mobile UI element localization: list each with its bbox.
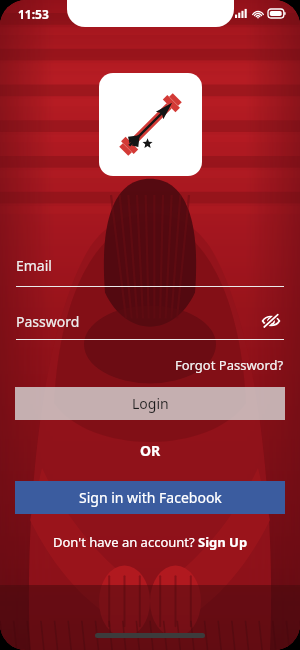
staticText: Don't have an account? Sign Up xyxy=(53,533,248,551)
staticText: Login xyxy=(132,394,169,413)
button[interactable]: Email xyxy=(16,256,284,287)
staticText: Email xyxy=(16,256,52,275)
button[interactable]: Forgot Password? xyxy=(175,356,284,374)
button[interactable]: Login xyxy=(15,387,285,420)
button[interactable]: Password xyxy=(16,312,258,331)
button[interactable]: Don't have an account? Sign Up xyxy=(53,533,248,551)
staticText: Password xyxy=(16,312,80,331)
staticText: OR xyxy=(140,441,161,460)
button[interactable]: Sign in with Facebook xyxy=(15,481,285,514)
button[interactable]: YEG fitness logo xyxy=(99,73,202,176)
button[interactable]: Show password xyxy=(258,308,284,334)
staticText: 11:53 xyxy=(18,6,49,22)
staticText: Sign in with Facebook xyxy=(79,488,222,507)
staticText: Forgot Password? xyxy=(175,356,284,374)
